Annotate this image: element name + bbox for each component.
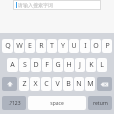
staticText: 请输入搜索字词: [18, 2, 53, 8]
staticText: W: [16, 41, 23, 51]
staticText: T: [50, 41, 54, 51]
staticText: P: [105, 41, 110, 51]
button[interactable]: .?123: [2, 96, 26, 110]
staticText: X: [33, 79, 38, 89]
button[interactable]: K: [86, 58, 96, 72]
button[interactable]: space: [28, 96, 86, 110]
staticText: S: [23, 60, 27, 70]
button[interactable]: W: [14, 39, 24, 53]
button[interactable]: D: [31, 58, 41, 72]
staticText: O: [93, 41, 99, 51]
button[interactable]: U: [69, 39, 79, 53]
button[interactable]: X: [30, 77, 40, 91]
staticText: Y: [61, 41, 65, 51]
button[interactable]: N: [74, 77, 84, 91]
staticText: I: [84, 41, 87, 51]
staticText: B: [66, 79, 71, 89]
staticText: F: [45, 60, 49, 70]
staticText: .?123: [8, 100, 21, 107]
button[interactable]: L: [97, 58, 107, 72]
button[interactable]: G: [53, 58, 63, 72]
button[interactable]: E: [25, 39, 35, 53]
button[interactable]: B: [63, 77, 73, 91]
button[interactable]: Z: [19, 77, 29, 91]
staticText: M: [87, 79, 94, 89]
button[interactable]: Shift: [2, 77, 17, 91]
button[interactable]: I: [80, 39, 90, 53]
staticText: N: [76, 79, 82, 89]
staticText: space: [50, 100, 64, 107]
button[interactable]: Backspace: [97, 77, 112, 91]
button[interactable]: Y: [58, 39, 68, 53]
staticText: J: [79, 60, 81, 70]
button[interactable]: Q: [2, 39, 13, 53]
staticText: U: [71, 41, 77, 51]
staticText: Q: [5, 41, 11, 51]
button[interactable]: T: [47, 39, 57, 53]
button[interactable]: J: [75, 58, 85, 72]
button[interactable]: A: [7, 58, 18, 72]
button[interactable]: R: [36, 39, 46, 53]
button[interactable]: S: [19, 58, 30, 72]
staticText: C: [44, 79, 49, 89]
button[interactable]: V: [52, 77, 62, 91]
staticText: H: [66, 60, 72, 70]
button[interactable]: H: [64, 58, 74, 72]
staticText: R: [39, 41, 44, 51]
staticText: Z: [22, 79, 27, 89]
staticText: V: [55, 79, 60, 89]
button[interactable]: M: [85, 77, 95, 91]
button[interactable]: return: [88, 96, 112, 110]
button[interactable]: F: [42, 58, 52, 72]
button[interactable]: 请输入搜索字词: [14, 1, 100, 9]
staticText: A: [10, 60, 15, 70]
button[interactable]: O: [91, 39, 101, 53]
staticText: L: [100, 60, 104, 70]
staticText: E: [28, 41, 32, 51]
staticText: K: [89, 60, 94, 70]
staticText: G: [55, 60, 61, 70]
button[interactable]: P: [102, 39, 112, 53]
button[interactable]: C: [41, 77, 51, 91]
staticText: D: [33, 60, 39, 70]
staticText: return: [93, 100, 108, 107]
